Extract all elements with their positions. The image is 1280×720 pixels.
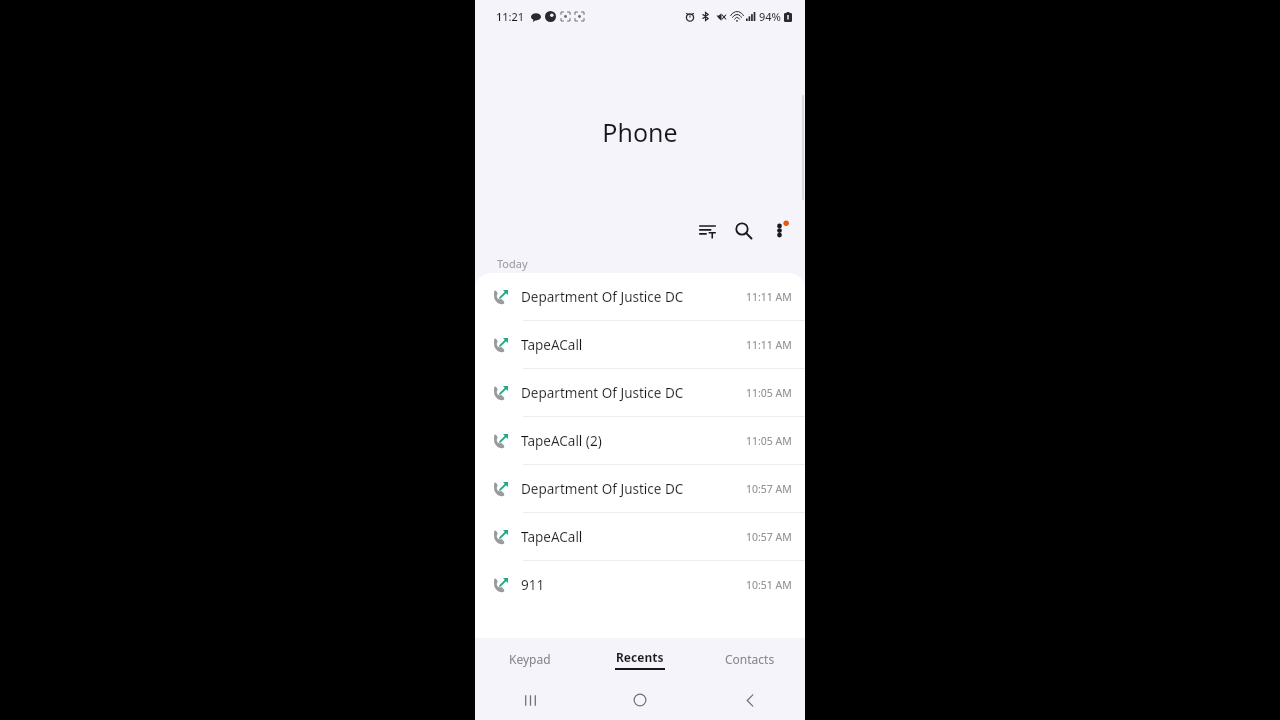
button[interactable]: Department Of Justice DC	[475, 369, 805, 417]
staticText: 10:57 AM	[746, 530, 792, 544]
button[interactable]: TapeACall	[475, 321, 805, 369]
button[interactable]: Department Of Justice DC	[475, 465, 805, 513]
staticText: Department Of Justice DC	[521, 480, 746, 498]
staticText: 11:05 AM	[746, 386, 792, 400]
button[interactable]: TapeACall	[475, 513, 805, 561]
button[interactable]: Search	[726, 213, 760, 247]
staticText: 11:11 AM	[746, 290, 792, 304]
staticText: 11:05 AM	[746, 434, 792, 448]
staticText: 10:57 AM	[746, 482, 792, 496]
staticText: Department Of Justice DC	[521, 288, 746, 306]
staticText: TapeACall	[521, 336, 746, 354]
staticText: Recents	[616, 649, 664, 665]
button[interactable]: Sort	[690, 213, 724, 247]
button[interactable]: Recent apps	[475, 680, 585, 720]
button[interactable]: TapeACall (2)	[475, 417, 805, 465]
button[interactable]: Home	[585, 680, 695, 720]
staticText: Contacts	[725, 651, 775, 667]
button[interactable]: More options	[762, 213, 796, 247]
staticText: TapeACall	[521, 528, 746, 546]
staticText: Phone	[602, 115, 678, 149]
staticText: Today	[497, 256, 528, 271]
staticText: Department Of Justice DC	[521, 384, 746, 402]
button[interactable]: Department Of Justice DC	[475, 273, 805, 321]
button[interactable]: Back	[695, 680, 805, 720]
button[interactable]: Recents	[585, 638, 695, 680]
staticText: Keypad	[509, 651, 551, 667]
staticText: 11:11 AM	[746, 338, 792, 352]
button[interactable]: Keypad	[475, 638, 585, 680]
staticText: 94%	[759, 9, 781, 24]
staticText: TapeACall (2)	[521, 432, 746, 450]
staticText: 10:51 AM	[746, 578, 792, 592]
staticText: 11:21	[496, 9, 525, 24]
button[interactable]: 911	[475, 561, 805, 609]
button[interactable]: Contacts	[695, 638, 805, 680]
staticText: 911	[521, 576, 746, 594]
